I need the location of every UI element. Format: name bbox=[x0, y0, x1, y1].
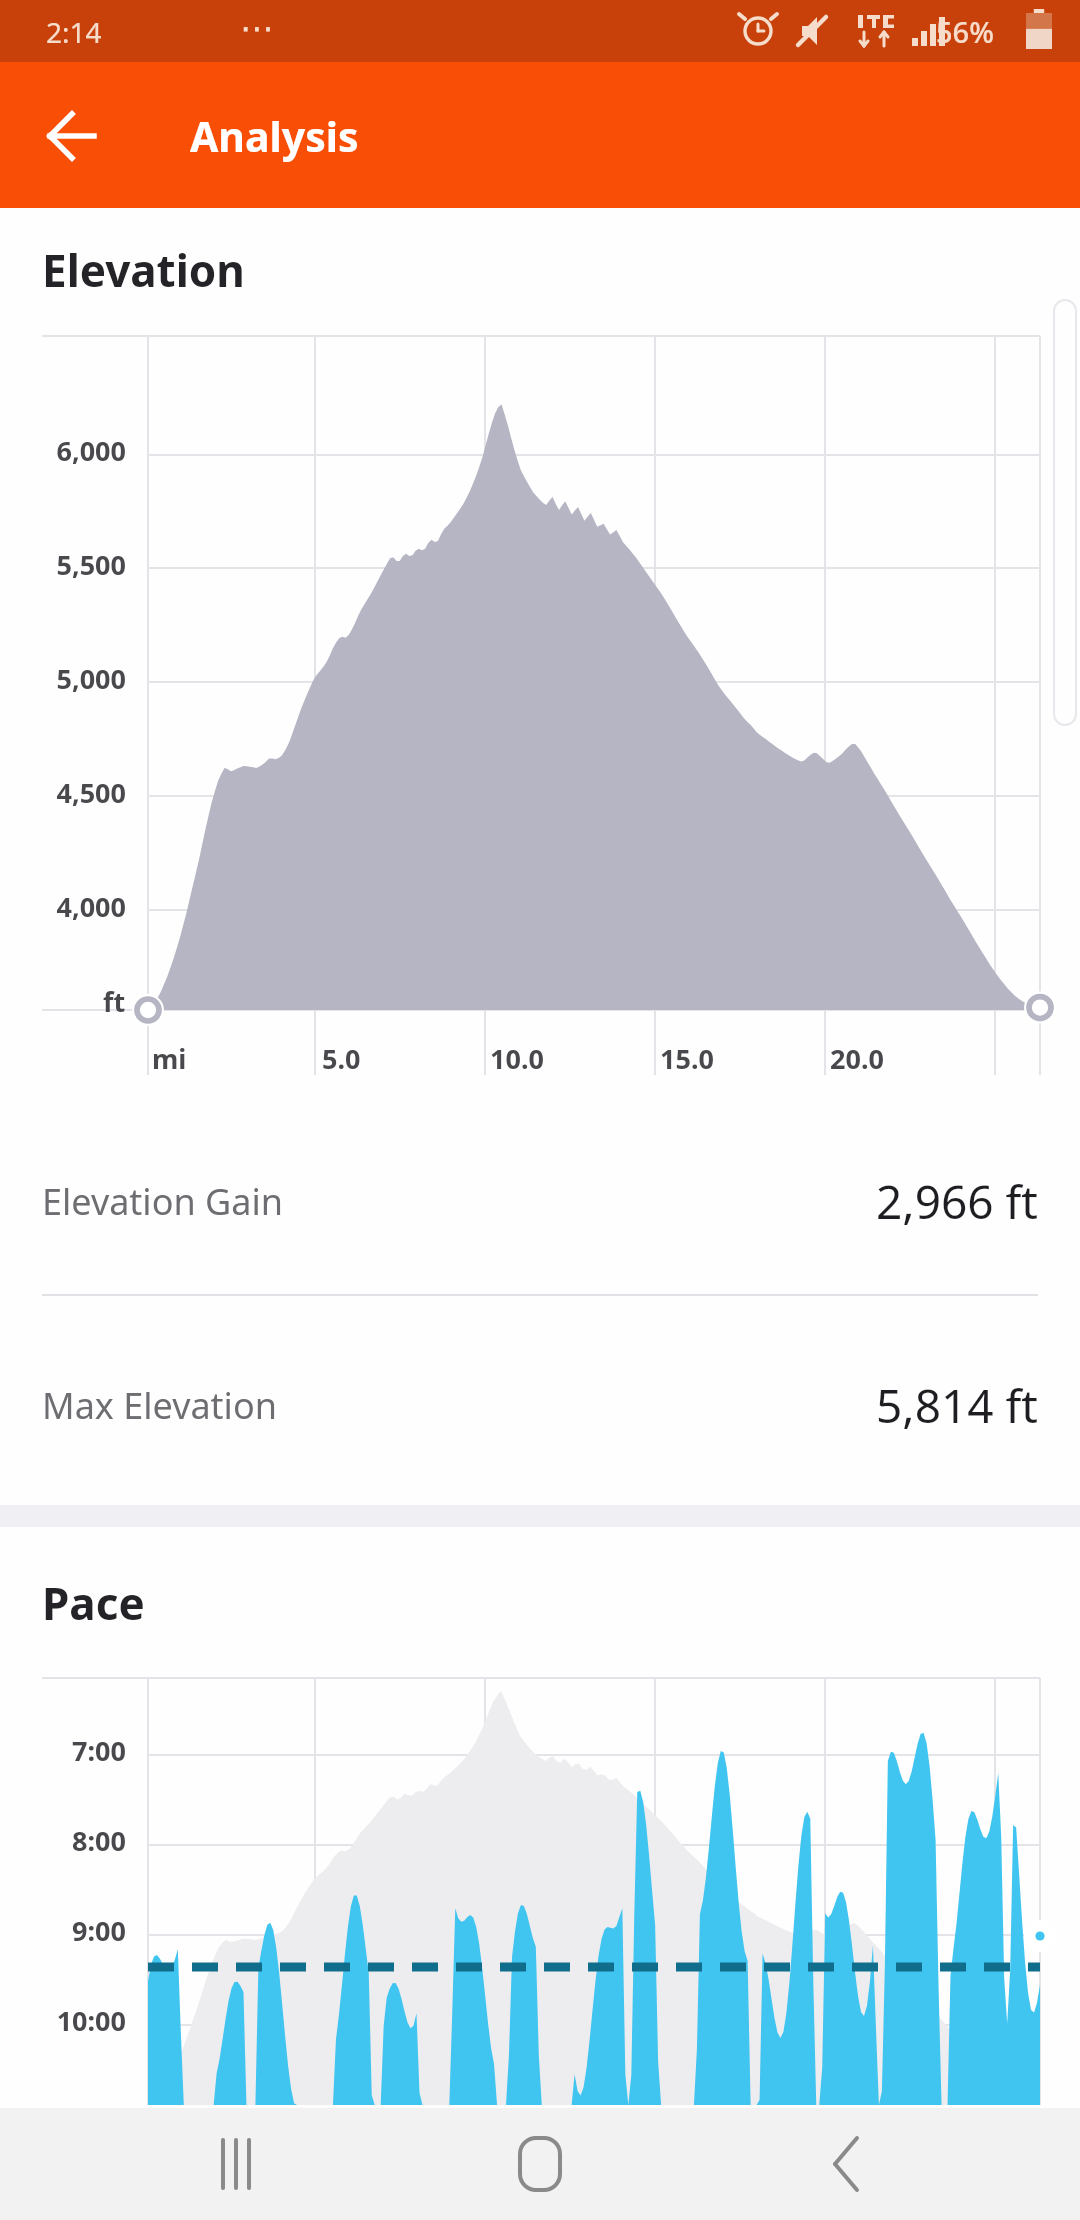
staticText: 4,000 bbox=[56, 888, 126, 925]
staticText: ft bbox=[103, 983, 126, 1020]
staticText: Pace bbox=[42, 1573, 145, 1633]
staticText: 20.0 bbox=[830, 1040, 884, 1077]
button[interactable] bbox=[0, 1054, 1080, 1129]
staticText: 5,000 bbox=[56, 660, 126, 697]
staticText: 7:00 bbox=[72, 1732, 126, 1769]
staticText: 2,966 ft bbox=[876, 1170, 1038, 1233]
staticText: 9:00 bbox=[72, 1912, 126, 1949]
staticText: 2:14 bbox=[46, 13, 102, 51]
button[interactable]: Back bbox=[720, 2164, 1080, 2220]
staticText: 10:00 bbox=[56, 2002, 126, 2039]
staticText: Elevation Gain bbox=[42, 1177, 283, 1226]
button[interactable]: Back bbox=[20, 82, 92, 154]
staticText: Elevation bbox=[42, 240, 245, 300]
staticText: 5,500 bbox=[56, 546, 126, 583]
staticText: Max Elevation bbox=[42, 1381, 277, 1430]
staticText: 5.0 bbox=[322, 1040, 361, 1077]
button[interactable]: Recents bbox=[0, 2164, 360, 2220]
staticText: 8:00 bbox=[72, 1822, 126, 1859]
staticText: 4,500 bbox=[56, 774, 126, 811]
staticText: 10.0 bbox=[490, 1040, 544, 1077]
staticText: 6,000 bbox=[56, 432, 126, 469]
staticText: ⋯ bbox=[240, 8, 274, 48]
staticText: 56% bbox=[936, 12, 994, 51]
staticText: 5,814 ft bbox=[876, 1374, 1038, 1437]
button[interactable]: Max Elevation bbox=[0, 1370, 1080, 1440]
staticText: Analysis bbox=[190, 108, 359, 164]
button[interactable]: Home bbox=[360, 2164, 720, 2220]
staticText: mi bbox=[152, 1040, 187, 1077]
button[interactable]: Elevation Gain bbox=[0, 1166, 1080, 1236]
staticText: 15.0 bbox=[660, 1040, 714, 1077]
button[interactable] bbox=[0, 1129, 1080, 1204]
